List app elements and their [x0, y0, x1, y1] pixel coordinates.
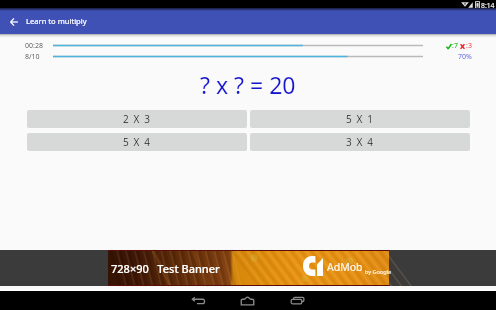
button[interactable]: Home	[235, 291, 259, 310]
staticText: by Google	[365, 268, 392, 275]
staticText: ? x ? = 20	[200, 69, 296, 100]
button[interactable]: 3 X 4	[250, 133, 470, 151]
staticText: :7	[452, 41, 458, 51]
staticText: 8:14	[481, 1, 495, 9]
staticText: 00:28	[25, 41, 43, 51]
staticText: 70%	[458, 52, 472, 62]
button[interactable]: Back	[0, 8, 26, 34]
staticText: AdMob	[327, 260, 363, 274]
staticText: 3 X 4	[346, 135, 374, 149]
staticText: 5 X 4	[123, 135, 151, 149]
button[interactable]: Back	[186, 291, 210, 310]
staticText: 728×90 Test Banner	[111, 261, 220, 276]
button[interactable]: 5 X 1	[250, 110, 470, 128]
staticText: 8/10	[25, 52, 40, 62]
button[interactable]: 728×90 Test Banner	[0, 250, 496, 286]
button[interactable]: Recent apps	[285, 291, 309, 310]
button[interactable]: 5 X 4	[27, 133, 247, 151]
staticText: 5 X 1	[346, 112, 374, 126]
staticText: :3	[466, 41, 472, 51]
staticText: Learn to multiply	[26, 16, 87, 26]
button[interactable]: 2 X 3	[27, 110, 247, 128]
staticText: 2 X 3	[123, 112, 151, 126]
